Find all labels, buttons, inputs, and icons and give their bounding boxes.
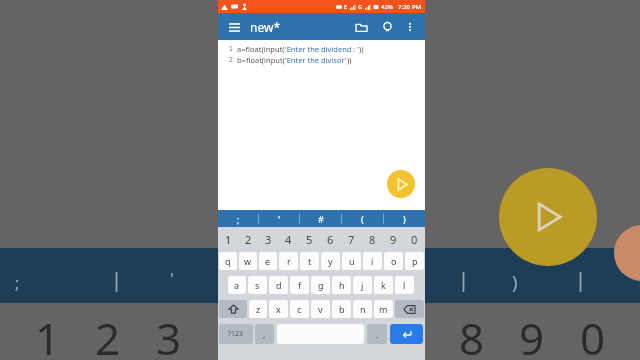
staticText: PM <box>412 3 422 11</box>
staticText: z <box>256 303 261 315</box>
button[interactable]: ' <box>259 210 299 227</box>
button[interactable]: e <box>259 252 277 270</box>
staticText: 2 <box>228 55 233 65</box>
staticText: | <box>111 266 123 293</box>
button[interactable]: Hint <box>376 16 398 38</box>
button[interactable]: f <box>290 276 309 294</box>
staticText: ; <box>15 272 20 294</box>
button[interactable]: 1 <box>218 230 238 248</box>
staticText: 0 <box>411 232 418 247</box>
staticText: ) <box>512 270 518 295</box>
button[interactable]: v <box>311 300 330 318</box>
button[interactable]: 6 <box>320 230 341 248</box>
button[interactable]: # <box>300 210 341 227</box>
button[interactable]: 4 <box>278 230 299 248</box>
button[interactable]: l <box>395 276 414 294</box>
button[interactable]: h <box>332 276 351 294</box>
staticText: ( <box>361 213 364 225</box>
button[interactable]: 8 <box>362 230 383 248</box>
button[interactable]: Open folder <box>350 16 372 38</box>
button[interactable]: Shift <box>219 300 247 318</box>
button[interactable]: 3 <box>258 230 278 248</box>
staticText: ' <box>170 268 174 290</box>
button[interactable]: m <box>374 300 393 318</box>
staticText: r <box>287 255 291 267</box>
staticText: 9 <box>519 308 545 360</box>
button[interactable]: Menu <box>224 17 244 37</box>
button[interactable]: g <box>311 276 330 294</box>
staticText: p <box>412 255 418 267</box>
staticText: 7 <box>348 232 355 247</box>
button[interactable]: b <box>332 300 351 318</box>
staticText: g <box>318 279 324 291</box>
staticText: u <box>349 255 355 267</box>
staticText: | <box>575 266 587 293</box>
staticText: e <box>265 255 271 267</box>
button[interactable]: j <box>353 276 372 294</box>
button[interactable]: i <box>363 252 382 270</box>
button[interactable]: ) <box>384 210 425 227</box>
staticText: o <box>391 255 397 267</box>
button[interactable]: d <box>269 276 288 294</box>
button[interactable]: Symbols <box>219 324 253 344</box>
button[interactable]: r <box>279 252 298 270</box>
button[interactable]: p <box>405 252 424 270</box>
staticText: , <box>263 328 266 340</box>
button[interactable]: ; <box>218 210 258 227</box>
button[interactable]: Backspace <box>395 300 424 318</box>
button[interactable]: n <box>353 300 372 318</box>
button[interactable]: More options <box>400 17 420 37</box>
staticText: 4 <box>285 232 292 247</box>
button[interactable]: Period <box>367 324 387 344</box>
button[interactable]: q <box>219 252 237 270</box>
button[interactable]: s <box>248 276 267 294</box>
button[interactable]: Run <box>387 170 415 198</box>
staticText: c <box>297 303 302 315</box>
button[interactable]: Comma <box>255 324 274 344</box>
staticText: n <box>360 303 366 315</box>
staticText: m <box>379 303 388 315</box>
staticText: ?123 <box>228 329 244 339</box>
button[interactable]: u <box>342 252 361 270</box>
button[interactable]: 5 <box>299 230 320 248</box>
button[interactable]: w <box>239 252 257 270</box>
staticText: i <box>371 255 374 267</box>
staticText: ' <box>278 213 281 225</box>
button[interactable]: y <box>321 252 340 270</box>
staticText: 2 <box>95 308 121 360</box>
staticText: 0 <box>580 308 606 360</box>
button[interactable]: k <box>374 276 393 294</box>
staticText: 8 <box>459 308 485 360</box>
button[interactable]: x <box>269 300 288 318</box>
button[interactable]: ( <box>342 210 383 227</box>
staticText: k <box>381 279 386 291</box>
staticText: x <box>276 303 281 315</box>
staticText: h <box>339 279 345 291</box>
button[interactable]: a <box>228 276 246 294</box>
button[interactable]: z <box>249 300 267 318</box>
button[interactable]: 2 <box>238 230 258 248</box>
staticText: 5 <box>306 232 313 247</box>
staticText: 'Enter the dividend : ' <box>285 44 359 54</box>
button[interactable]: 7 <box>341 230 362 248</box>
button[interactable]: Enter <box>390 324 423 344</box>
button[interactable]: c <box>290 300 309 318</box>
staticText: ; <box>237 213 240 225</box>
staticText: b <box>339 303 345 315</box>
staticText: 8 <box>369 232 376 247</box>
button[interactable]: t <box>300 252 319 270</box>
staticText: 42% <box>381 3 393 11</box>
button[interactable]: 9 <box>383 230 404 248</box>
staticText: q <box>225 255 231 267</box>
button[interactable]: o <box>384 252 403 270</box>
staticText: | <box>458 266 470 293</box>
staticText: )) <box>359 44 364 54</box>
button[interactable]: 0 <box>404 230 425 248</box>
staticText: 'Enter the divisor' <box>285 55 347 65</box>
staticText: f <box>298 279 302 291</box>
staticText: d <box>276 279 282 291</box>
staticText: . <box>376 328 379 340</box>
staticText: 9 <box>390 232 397 247</box>
staticText: 2 <box>245 232 252 247</box>
